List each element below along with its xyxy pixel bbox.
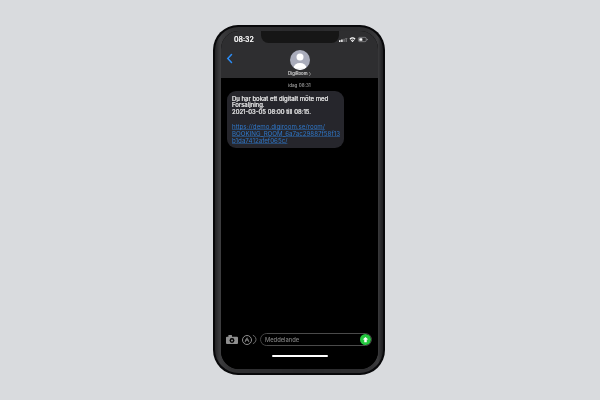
staticText: Du har bokat ett digitalt möte med Försä… (232, 95, 329, 116)
button[interactable]: Meddelande (260, 333, 372, 346)
button[interactable]: Send (360, 334, 371, 345)
staticText: Meddelande (265, 336, 300, 343)
staticText: https://demo.digiroom.se/room/ BOOKING_R… (232, 123, 341, 144)
button[interactable]: Du har bokat ett digitalt möte med Försä… (227, 91, 344, 148)
button[interactable]: DigiRoom (288, 50, 311, 76)
staticText: 08:32 (234, 35, 254, 43)
button[interactable]: Back (222, 51, 237, 66)
staticText: idag 08:31 (288, 83, 311, 89)
staticText: DigiRoom (288, 71, 308, 76)
button[interactable]: Apps (240, 333, 253, 346)
button[interactable]: Camera (225, 333, 238, 346)
